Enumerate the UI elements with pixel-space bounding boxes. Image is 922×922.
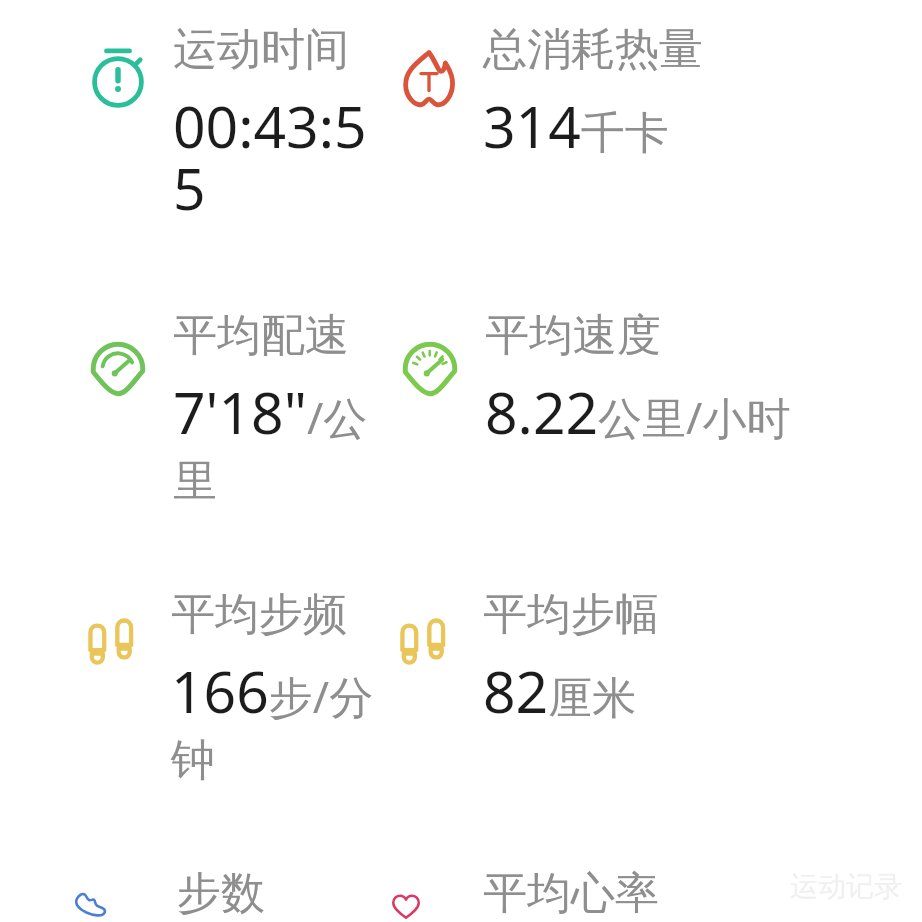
button[interactable]: 平均配速 <box>85 308 385 509</box>
button[interactable]: 运动时间 <box>85 22 385 226</box>
staticText: 平均配速 <box>173 308 349 363</box>
other: 平均步幅 <box>397 613 461 677</box>
staticText: 平均速度 <box>485 308 661 363</box>
staticText: 运动记录 <box>790 869 902 904</box>
staticText: 平均步频 <box>171 587 347 642</box>
button[interactable]: 平均心率 <box>391 866 730 922</box>
staticText: 平均心率 <box>483 866 659 921</box>
other: 平均配速 <box>85 332 151 398</box>
button[interactable]: 平均步频 <box>85 587 385 788</box>
button[interactable]: 总消耗热量 <box>397 22 703 165</box>
other: 平均速度 <box>397 332 463 398</box>
staticText: 314千卡 <box>483 87 669 165</box>
staticText: 166步/分钟 <box>171 652 385 788</box>
button[interactable]: 平均速度 <box>397 308 791 451</box>
staticText: 8.22公里/小时 <box>485 373 791 451</box>
button[interactable]: 平均步幅 <box>397 587 659 730</box>
staticText: 00:43:55 <box>173 87 385 226</box>
other: 步数 <box>73 886 155 922</box>
other: 运动时间 <box>85 44 151 110</box>
staticText: 运动时间 <box>173 22 349 77</box>
other: 总消耗热量 <box>397 48 461 112</box>
staticText: 总消耗热量 <box>483 22 703 77</box>
staticText: 步数 <box>177 866 265 921</box>
staticText: 平均步幅 <box>483 587 659 642</box>
staticText: 7'18"/公里 <box>173 373 385 509</box>
other: 平均步频 <box>85 613 149 677</box>
other: 平均心率 <box>391 892 461 922</box>
button[interactable]: 步数 <box>73 866 385 922</box>
staticText: 82厘米 <box>483 652 637 730</box>
